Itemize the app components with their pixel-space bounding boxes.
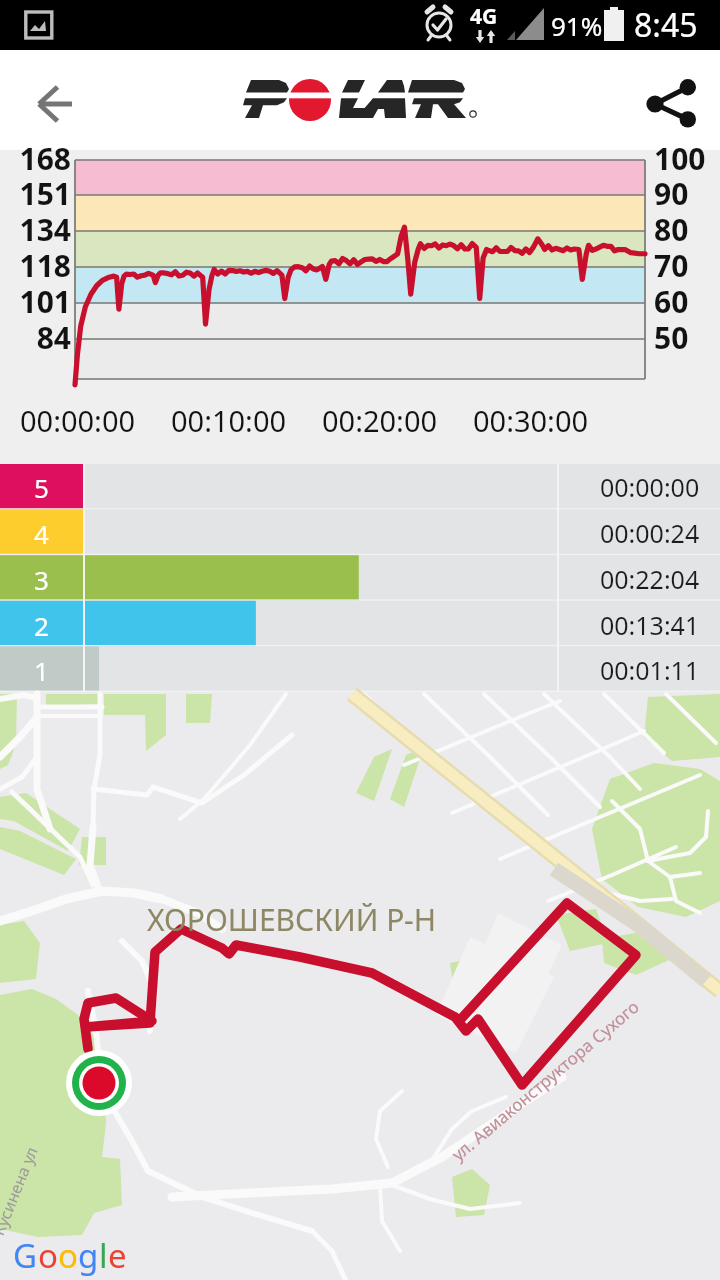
- staticText: 00:10:00: [171, 401, 287, 440]
- staticText: e: [108, 1233, 127, 1278]
- staticText: 70: [654, 245, 720, 286]
- staticText: 151: [3, 173, 71, 214]
- button[interactable]: 2: [0, 602, 720, 648]
- staticText: 2: [34, 608, 49, 643]
- staticText: 168: [3, 138, 71, 179]
- staticText: 5: [34, 470, 49, 505]
- staticText: 00:00:00: [600, 470, 700, 504]
- staticText: 00:00:00: [20, 401, 136, 440]
- staticText: 00:30:00: [473, 401, 589, 440]
- staticText: 3: [34, 562, 49, 597]
- staticText: 00:00:24: [600, 516, 700, 550]
- button[interactable]: 4: [0, 510, 720, 556]
- staticText: 1: [34, 653, 49, 688]
- staticText: 00:20:00: [322, 401, 438, 440]
- staticText: 60: [654, 281, 720, 322]
- staticText: 134: [3, 209, 71, 250]
- staticText: ХОРОШЕВСКИЙ Р-Н: [147, 899, 436, 940]
- staticText: 84: [3, 317, 71, 358]
- staticText: o: [58, 1233, 78, 1278]
- staticText: 101: [3, 281, 71, 322]
- staticText: 4: [34, 516, 49, 551]
- staticText: o: [38, 1233, 58, 1278]
- button[interactable]: 5: [0, 464, 720, 510]
- button[interactable]: 1: [0, 648, 720, 692]
- staticText: 90: [654, 173, 720, 214]
- staticText: G: [13, 1233, 38, 1278]
- staticText: 4G: [470, 2, 498, 31]
- staticText: 00:01:11: [600, 653, 700, 687]
- staticText: Кусинена ул: [0, 1143, 43, 1239]
- button[interactable]: 3: [0, 556, 720, 602]
- staticText: g: [78, 1233, 99, 1278]
- staticText: 00:22:04: [600, 562, 700, 596]
- staticText: ул. Авиаконструктора Сухого: [447, 995, 644, 1166]
- staticText: 91%: [551, 8, 603, 43]
- staticText: 100: [654, 138, 720, 179]
- staticText: 8:45: [634, 3, 698, 47]
- staticText: 80: [654, 209, 720, 250]
- staticText: 50: [654, 317, 720, 358]
- staticText: l: [99, 1233, 108, 1278]
- button[interactable]: Share: [640, 68, 704, 132]
- button[interactable]: Back: [16, 68, 80, 132]
- button[interactable]: ХОРОШЕВСКИЙ Р-Н: [0, 692, 720, 1280]
- staticText: 00:13:41: [600, 608, 700, 642]
- staticText: 118: [3, 245, 71, 286]
